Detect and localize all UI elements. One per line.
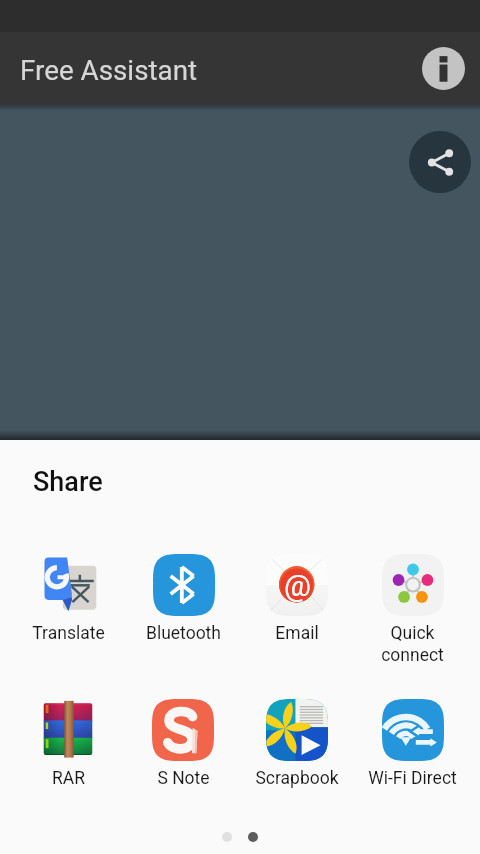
button[interactable]: Quick connect xyxy=(360,548,464,678)
button[interactable]: Scrapbook xyxy=(245,693,349,823)
staticText: Email xyxy=(275,623,319,644)
staticText: Translate xyxy=(32,623,105,644)
staticText: RAR xyxy=(52,768,85,789)
button[interactable]: @ xyxy=(245,548,349,678)
staticText: Scrapbook xyxy=(255,768,339,789)
staticText: Share xyxy=(33,466,103,498)
button[interactable]: Info xyxy=(419,44,467,92)
button[interactable]: Translate xyxy=(16,548,120,678)
button[interactable]: S Note xyxy=(131,693,235,823)
button[interactable]: Wi-Fi Direct xyxy=(360,693,464,823)
staticText: Bluetooth xyxy=(146,623,221,644)
staticText: S Note xyxy=(157,768,210,789)
staticText: @ xyxy=(284,568,311,603)
button[interactable]: Bluetooth xyxy=(131,548,235,678)
button[interactable]: Share xyxy=(409,131,471,193)
button[interactable]: RAR xyxy=(16,693,120,823)
staticText: Free Assistant xyxy=(20,54,198,87)
staticText: Wi-Fi Direct xyxy=(368,768,457,789)
staticText: Quick connect xyxy=(381,623,444,665)
